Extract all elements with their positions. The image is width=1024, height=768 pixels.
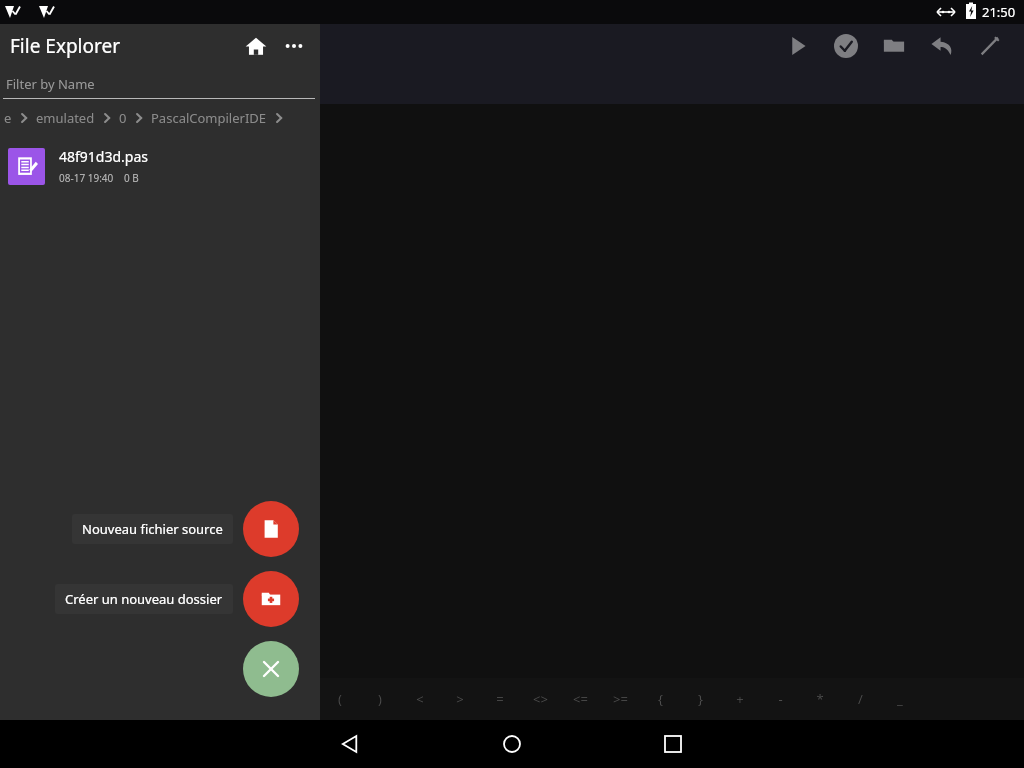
staticText: + <box>736 690 744 708</box>
button[interactable]: = <box>480 678 520 720</box>
staticText: = <box>496 690 504 708</box>
button[interactable]: 48f91d3d.pas <box>0 140 320 192</box>
staticText: _ <box>897 690 903 708</box>
staticText: Filter by Name <box>6 75 95 93</box>
staticText: / <box>858 690 863 708</box>
staticText: File Explorer <box>10 33 121 59</box>
staticText: Nouveau fichier source <box>82 520 223 538</box>
staticText: PascalCompilerIDE <box>151 109 267 127</box>
button[interactable]: * <box>800 678 840 720</box>
button[interactable]: <> <box>520 678 560 720</box>
button[interactable]: Home <box>488 720 536 768</box>
button[interactable]: < <box>400 678 440 720</box>
button[interactable]: Back <box>326 720 374 768</box>
staticText: Créer un nouveau dossier <box>65 590 223 608</box>
button[interactable]: Edit <box>966 24 1014 68</box>
staticText: } <box>698 690 703 708</box>
staticText: emulated <box>36 109 95 127</box>
staticText: ( <box>338 690 342 708</box>
button[interactable]: emulated <box>32 109 99 127</box>
staticText: 08-17 19:40 <box>59 171 114 185</box>
staticText: <= <box>573 690 588 708</box>
button[interactable]: Créer un nouveau dossier <box>55 584 233 614</box>
button[interactable]: Undo <box>918 24 966 68</box>
button[interactable]: > <box>440 678 480 720</box>
button[interactable]: >= <box>600 678 640 720</box>
button[interactable]: e <box>0 109 16 127</box>
button[interactable]: Filter by Name <box>0 68 320 104</box>
button[interactable]: More options <box>276 28 312 64</box>
button[interactable]: } <box>680 678 720 720</box>
staticText: >= <box>613 690 628 708</box>
button[interactable]: + <box>720 678 760 720</box>
staticText: 0 B <box>124 171 139 185</box>
button[interactable]: / <box>840 678 880 720</box>
staticText: { <box>658 690 663 708</box>
button[interactable]: ) <box>360 678 400 720</box>
staticText: e <box>4 109 12 127</box>
staticText: < <box>416 690 424 708</box>
staticText: <> <box>533 690 548 708</box>
button[interactable]: Open folder <box>870 24 918 68</box>
button[interactable]: Nouveau fichier source <box>72 514 233 544</box>
staticText: 0 <box>119 109 127 127</box>
staticText: 48f91d3d.pas <box>59 147 148 166</box>
staticText: * <box>816 690 824 708</box>
button[interactable]: Close menu <box>243 641 299 697</box>
staticText: ) <box>378 690 382 708</box>
button[interactable]: { <box>640 678 680 720</box>
button[interactable]: Nouveau fichier source <box>243 501 299 557</box>
button[interactable]: Run <box>774 24 822 68</box>
button[interactable]: PascalCompilerIDE <box>147 109 271 127</box>
button[interactable]: Recent apps <box>649 720 697 768</box>
button[interactable]: Créer un nouveau dossier <box>243 571 299 627</box>
button[interactable]: 0 <box>115 109 131 127</box>
staticText: - <box>778 690 783 708</box>
staticText: > <box>456 690 464 708</box>
button[interactable]: ( <box>320 678 360 720</box>
button[interactable]: <= <box>560 678 600 720</box>
button[interactable]: Home <box>236 26 276 66</box>
staticText: 21:50 <box>982 3 1016 21</box>
button[interactable]: Check <box>822 24 870 68</box>
